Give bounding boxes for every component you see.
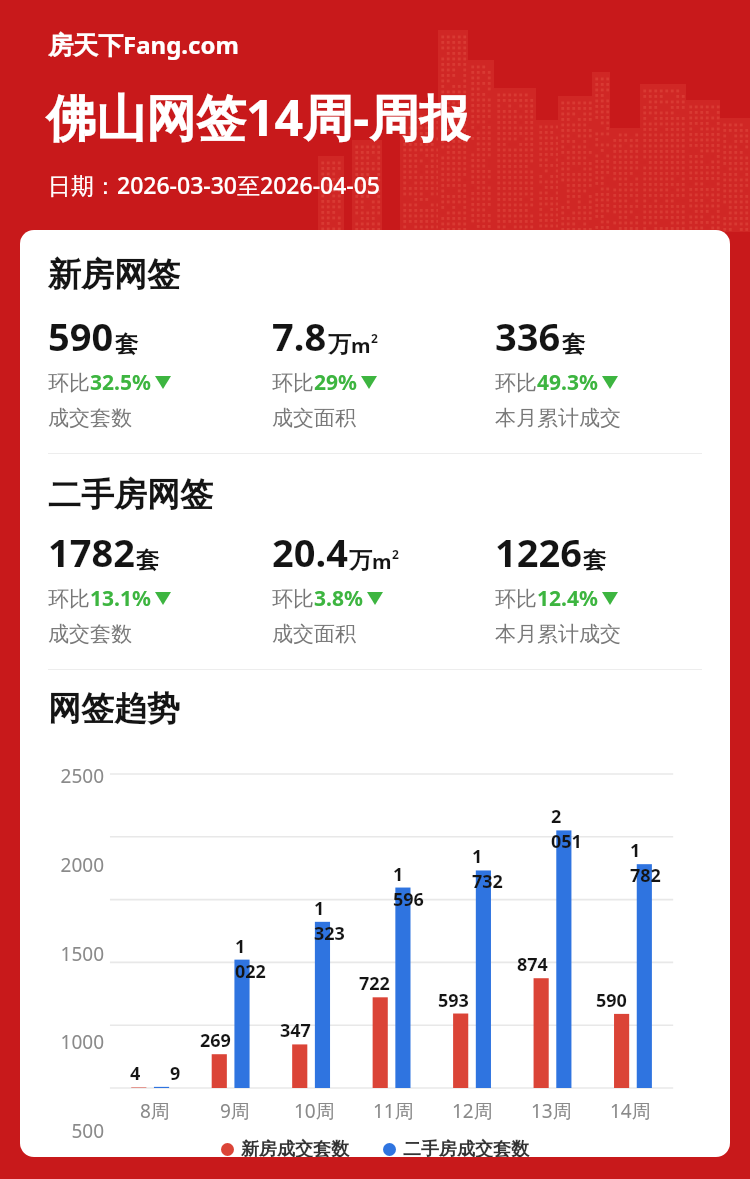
staticText: 2500 — [20, 763, 104, 789]
staticText: 套 — [115, 330, 138, 359]
staticText: 1 782 — [630, 838, 670, 888]
staticText: 新房成交套数 — [241, 1138, 349, 1157]
staticText: 590 — [596, 988, 627, 1013]
button[interactable]: 1782 — [48, 526, 272, 647]
staticText: 成交面积 — [272, 405, 356, 431]
staticText: 新房网签 — [48, 254, 180, 296]
staticText: 环比 — [48, 370, 90, 396]
staticText: 500 — [20, 1118, 104, 1144]
staticText: 11周 — [373, 1098, 414, 1124]
staticText: 12.4% — [537, 584, 598, 613]
staticText: 环比 — [495, 370, 537, 396]
staticText: 1 323 — [314, 896, 354, 946]
staticText: 成交套数 — [48, 405, 132, 431]
staticText: 本月累计成交 — [495, 405, 621, 431]
staticText: 环比 — [495, 586, 537, 612]
button[interactable]: 二手房成交套数 — [383, 1138, 529, 1157]
staticText: 网签趋势 — [48, 688, 180, 730]
staticText: 2000 — [20, 852, 104, 878]
button[interactable]: 590 — [48, 310, 272, 431]
staticText: 成交面积 — [272, 621, 356, 647]
staticText: 套 — [136, 546, 159, 575]
staticText: 环比 — [272, 370, 314, 396]
staticText: 9 — [170, 1061, 181, 1086]
staticText: 1226 — [495, 526, 582, 578]
staticText: 12周 — [452, 1098, 493, 1124]
staticText: 10周 — [294, 1098, 335, 1124]
staticText: m — [351, 332, 371, 359]
staticText: 9周 — [220, 1098, 250, 1124]
staticText: 4 — [130, 1061, 141, 1086]
staticText: 环比 — [48, 586, 90, 612]
staticText: 2 051 — [551, 804, 591, 854]
staticText: m — [372, 548, 392, 575]
staticText: 1 596 — [393, 862, 433, 912]
staticText: 日期：2026-03-30至2026-04-05 — [48, 169, 381, 200]
staticText: 590 — [48, 310, 114, 362]
staticText: 14周 — [610, 1098, 651, 1124]
staticText: 8周 — [140, 1098, 170, 1124]
staticText: 佛山网签14周-周报 — [46, 83, 470, 151]
staticText: 1782 — [48, 526, 135, 578]
staticText: 874 — [517, 952, 548, 977]
staticText: 29% — [314, 368, 357, 397]
staticText: Fang.com — [123, 28, 239, 61]
staticText: 套 — [562, 330, 585, 359]
staticText: 1 732 — [472, 844, 512, 894]
staticText: 347 — [280, 1018, 311, 1043]
button[interactable]: 7.8 — [272, 310, 495, 431]
staticText: 722 — [359, 971, 390, 996]
staticText: 环比 — [272, 586, 314, 612]
staticText: 二手房网签 — [48, 474, 213, 516]
button[interactable]: 20.4 — [272, 526, 495, 647]
button[interactable]: 336 — [495, 310, 718, 431]
staticText: 二手房成交套数 — [403, 1138, 529, 1157]
staticText: 13.1% — [90, 584, 151, 613]
staticText: 1 022 — [235, 934, 275, 984]
staticText: 7.8 — [272, 310, 327, 362]
staticText: 房天下 — [48, 30, 123, 61]
staticText: 32.5% — [90, 368, 151, 397]
staticText: 本月累计成交 — [495, 621, 621, 647]
staticText: 3.8% — [314, 584, 363, 613]
staticText: 336 — [495, 310, 561, 362]
button[interactable]: 新房成交套数 — [221, 1138, 349, 1157]
staticText: 269 — [200, 1028, 231, 1053]
staticText: 万 — [349, 546, 372, 575]
staticText: 2 — [392, 546, 399, 562]
staticText: 1000 — [20, 1029, 104, 1055]
staticText: 1500 — [20, 941, 104, 967]
staticText: 13周 — [531, 1098, 572, 1124]
staticText: 万 — [328, 330, 351, 359]
staticText: 49.3% — [537, 368, 598, 397]
staticText: 成交套数 — [48, 621, 132, 647]
staticText: 20.4 — [272, 526, 348, 578]
staticText: 593 — [438, 988, 469, 1013]
staticText: 2 — [371, 330, 378, 346]
staticText: 套 — [583, 546, 606, 575]
button[interactable]: 1226 — [495, 526, 718, 647]
